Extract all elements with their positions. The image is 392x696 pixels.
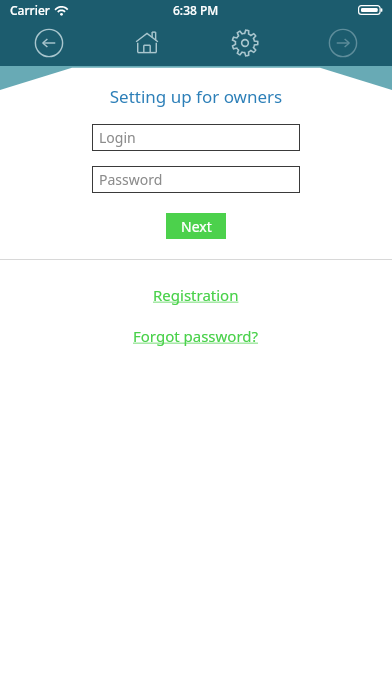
staticText: 6:38 PM: [173, 2, 219, 18]
staticText: Carrier: [10, 2, 50, 18]
button[interactable]: Settings: [196, 20, 294, 66]
button[interactable]: Back: [0, 20, 98, 66]
button[interactable]: Home: [98, 20, 196, 66]
button[interactable]: Registration: [147, 283, 245, 307]
button[interactable]: Forward: [294, 20, 392, 66]
button[interactable]: Password: [92, 166, 300, 193]
staticText: Password: [99, 170, 163, 189]
staticText: Login: [99, 128, 136, 147]
button[interactable]: Forgot password?: [127, 324, 265, 348]
staticText: Registration: [153, 285, 239, 305]
staticText: Setting up for owners: [0, 85, 392, 108]
staticText: Next: [181, 217, 212, 236]
button[interactable]: Login: [92, 124, 300, 151]
staticText: Forgot password?: [133, 326, 259, 346]
button[interactable]: Next: [166, 213, 226, 239]
